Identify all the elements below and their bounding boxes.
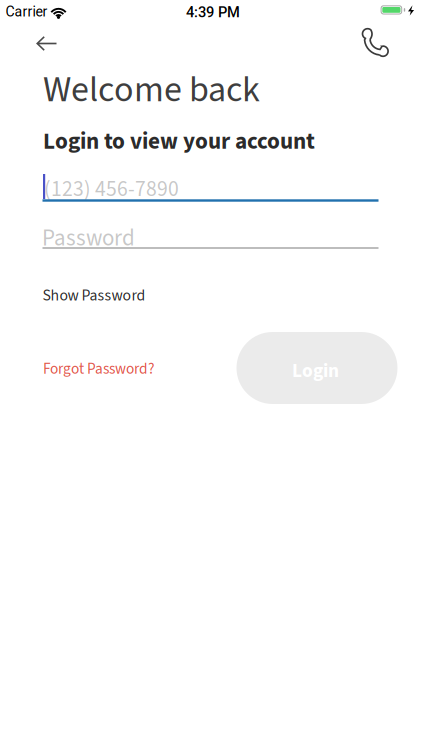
button[interactable] <box>28 28 66 60</box>
staticText: Login <box>292 357 339 385</box>
staticText: Show Password <box>42 284 145 307</box>
staticText: (123) 456-7890 <box>44 174 179 205</box>
staticText: Forgot Password? <box>43 358 155 380</box>
staticText: Welcome back <box>43 64 260 116</box>
staticText: Login to view your account <box>43 125 315 158</box>
staticText: 4:39 PM <box>186 4 240 21</box>
button[interactable] <box>360 28 390 58</box>
button[interactable]: Show Password <box>42 284 145 307</box>
staticText: Carrier <box>5 3 47 20</box>
button[interactable]: Login <box>236 332 397 404</box>
button[interactable]: Forgot Password? <box>43 358 155 380</box>
staticText: Password <box>42 222 135 255</box>
